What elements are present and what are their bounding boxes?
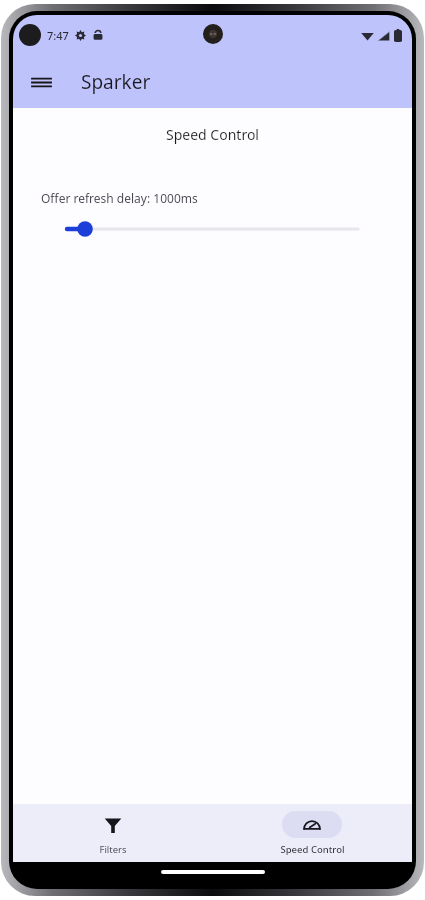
staticText: Offer refresh delay: 1000ms — [41, 190, 198, 206]
staticText: Sparker — [81, 69, 151, 95]
staticText: Speed Control — [13, 125, 412, 144]
button[interactable]: Offer refresh delay slider — [13, 216, 412, 242]
other: Filters — [104, 816, 122, 834]
other: Speed Control — [303, 816, 321, 834]
button[interactable]: Filters — [13, 805, 212, 861]
button[interactable]: Open navigation menu — [21, 62, 61, 102]
staticText: Speed Control — [280, 843, 345, 856]
button[interactable]: Speed Control — [212, 805, 412, 861]
staticText: Filters — [99, 843, 127, 856]
staticText: 7:47 — [47, 28, 69, 43]
